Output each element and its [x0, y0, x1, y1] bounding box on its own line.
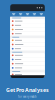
staticText: Get Pro Analyses [6, 86, 49, 93]
staticText: for every match [18, 95, 37, 98]
